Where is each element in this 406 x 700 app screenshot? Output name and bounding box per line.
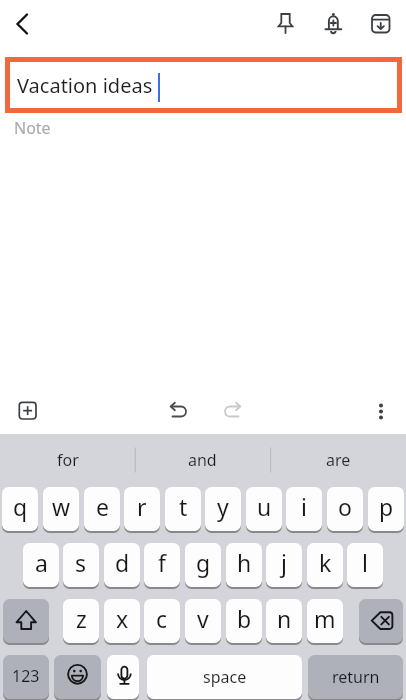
staticText: v <box>197 603 209 634</box>
button[interactable] <box>6 389 50 433</box>
button[interactable] <box>107 655 139 699</box>
button[interactable]: n <box>266 599 302 643</box>
button[interactable] <box>264 0 308 44</box>
staticText: z <box>76 603 87 634</box>
button[interactable]: t <box>165 487 201 531</box>
button[interactable]: are <box>271 434 406 486</box>
button[interactable] <box>54 655 101 699</box>
button[interactable] <box>359 2 403 46</box>
staticText: a <box>35 547 48 578</box>
staticText: f <box>158 547 166 578</box>
button[interactable]: l <box>347 543 383 587</box>
button[interactable]: Vacation ideas <box>5 57 402 113</box>
button[interactable]: x <box>104 599 140 643</box>
button[interactable] <box>311 0 355 44</box>
button[interactable]: return <box>308 655 403 699</box>
staticText: n <box>277 603 292 634</box>
staticText: 123 <box>12 665 40 687</box>
button[interactable]: e <box>84 487 120 531</box>
staticText: Note <box>14 117 51 139</box>
button[interactable]: z <box>63 599 99 643</box>
staticText: for <box>57 449 79 471</box>
staticText: q <box>13 491 28 522</box>
staticText: w <box>52 491 71 522</box>
staticText: h <box>237 547 252 578</box>
staticText: o <box>338 491 352 522</box>
button[interactable]: k <box>307 543 343 587</box>
staticText: b <box>237 603 252 634</box>
staticText: d <box>115 547 130 578</box>
staticText: j <box>281 547 287 578</box>
button[interactable]: u <box>246 487 282 531</box>
staticText: y <box>217 491 229 522</box>
staticText: e <box>96 491 109 522</box>
staticText: p <box>379 491 394 522</box>
button[interactable]: d <box>104 543 140 587</box>
button[interactable]: c <box>144 599 180 643</box>
staticText: i <box>301 491 307 522</box>
staticText: return <box>332 666 380 688</box>
button[interactable]: r <box>124 487 160 531</box>
button[interactable] <box>4 2 48 46</box>
button[interactable]: 123 <box>3 655 49 699</box>
staticText: l <box>362 547 368 578</box>
staticText: and <box>188 449 217 471</box>
button[interactable]: q <box>2 487 38 531</box>
button[interactable]: space <box>147 655 302 699</box>
staticText: are <box>326 449 351 471</box>
button[interactable] <box>156 389 200 433</box>
staticText: g <box>196 547 211 578</box>
button[interactable]: f <box>144 543 180 587</box>
button[interactable]: j <box>266 543 302 587</box>
button[interactable]: g <box>185 543 221 587</box>
staticText: t <box>179 491 188 522</box>
staticText: m <box>314 603 336 634</box>
staticText: Vacation ideas <box>17 72 153 99</box>
staticText: r <box>137 491 147 522</box>
button[interactable]: and <box>135 434 270 486</box>
staticText: k <box>319 547 332 578</box>
staticText: s <box>75 547 87 578</box>
button[interactable]: p <box>368 487 404 531</box>
button[interactable]: v <box>185 599 221 643</box>
button[interactable]: s <box>63 543 99 587</box>
button[interactable]: y <box>205 487 241 531</box>
button[interactable] <box>211 389 255 433</box>
button[interactable]: m <box>307 599 343 643</box>
staticText: u <box>257 491 272 522</box>
button[interactable]: b <box>226 599 262 643</box>
button[interactable]: a <box>23 543 59 587</box>
staticText: space <box>203 666 247 688</box>
staticText: x <box>116 603 129 634</box>
button[interactable]: h <box>226 543 262 587</box>
button[interactable] <box>3 599 49 643</box>
button[interactable]: w <box>43 487 79 531</box>
button[interactable] <box>359 599 403 643</box>
button[interactable]: for <box>0 434 135 486</box>
staticText: c <box>156 603 168 634</box>
button[interactable]: i <box>286 487 322 531</box>
button[interactable]: o <box>327 487 363 531</box>
button[interactable] <box>359 389 403 433</box>
